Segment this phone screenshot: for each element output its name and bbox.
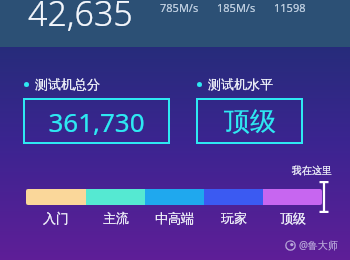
staticText: 主流 [103,210,129,226]
staticText: 顶级 [224,105,276,138]
button[interactable]: 测试机总分 [24,76,169,143]
staticText: 785M/s [160,0,199,15]
button[interactable]: 主流 [86,210,145,226]
button[interactable]: 中高端 [145,210,204,226]
button[interactable]: 测试机水平 [197,76,302,143]
staticText: 测试机水平 [208,76,273,92]
button[interactable] [26,189,322,205]
staticText: 顶级 [280,210,306,226]
staticText: @鲁大师 [299,238,338,252]
other: Your position marker [318,181,330,213]
button[interactable]: 顶级 [263,210,322,226]
staticText: 我在这里 [292,164,332,177]
staticText: 入门 [43,210,69,226]
button[interactable]: 玩家 [204,210,263,226]
staticText: 中高端 [155,210,194,226]
button[interactable]: Weibo @鲁大师 [285,238,338,252]
staticText: 42,635 [28,0,133,36]
staticText: 玩家 [221,210,247,226]
staticText: 11598 [274,0,306,15]
staticText: 185M/s [217,0,256,15]
button[interactable]: 入门 [26,210,86,226]
staticText: 361,730 [48,104,145,139]
staticText: 测试机总分 [35,76,100,92]
